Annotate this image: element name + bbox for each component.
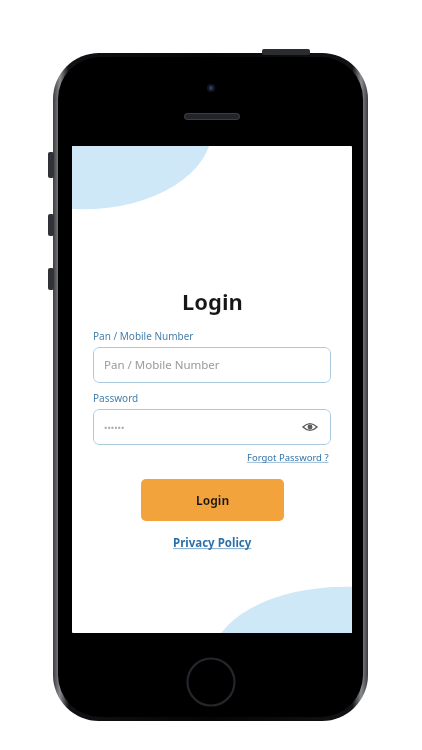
staticText: Password	[93, 391, 139, 405]
staticText: Forgot Password ?	[247, 451, 329, 464]
staticText: Privacy Policy	[173, 535, 252, 551]
button[interactable]: Pan / Mobile Number	[93, 347, 331, 383]
staticText: Login	[182, 286, 243, 316]
button[interactable]: Forgot Password ?	[245, 450, 331, 465]
staticText: Login	[196, 492, 230, 508]
staticText: ••••••	[104, 421, 125, 433]
staticText: Pan / Mobile Number	[93, 329, 194, 343]
staticText: Pan / Mobile Number	[104, 357, 220, 373]
button[interactable]: ••••••	[93, 409, 331, 445]
button[interactable]: Login	[141, 479, 284, 521]
button[interactable]: Privacy Policy	[170, 533, 255, 553]
button[interactable]: Show password	[300, 417, 320, 437]
